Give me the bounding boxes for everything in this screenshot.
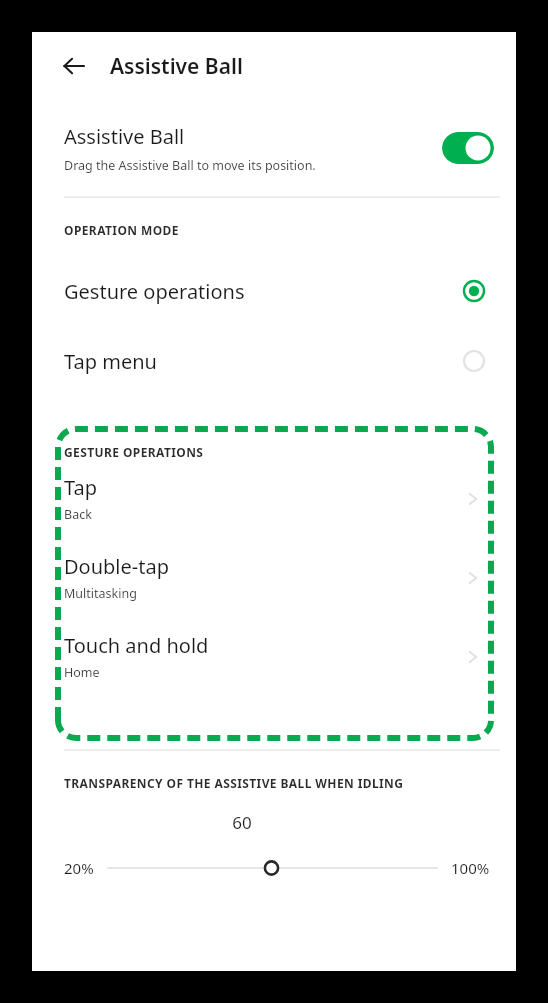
button[interactable]: Back [52,44,96,88]
staticText: Double-tap [64,553,169,580]
button[interactable]: Touch and hold [55,632,494,681]
staticText: Home [64,664,100,681]
staticText: Tap menu [64,348,462,375]
button[interactable]: Tap [55,474,494,523]
staticText: Tap [64,474,98,501]
button[interactable]: Transparency slider [108,848,437,888]
staticText: TRANSPARENCY OF THE ASSISTIVE BALL WHEN … [64,775,404,791]
button[interactable]: Assistive Ball [32,100,516,196]
staticText: GESTURE OPERATIONS [64,444,204,460]
staticText: Multitasking [64,585,137,602]
staticText: 100% [451,858,490,878]
staticText: OPERATION MODE [64,222,179,238]
staticText: Drag the Assistive Ball to move its posi… [64,157,316,174]
staticText: Assistive Ball [64,123,185,150]
button[interactable]: Tap menu [32,326,516,396]
staticText: 60 [0,811,484,834]
button[interactable]: Gesture operations [32,256,516,326]
staticText: Gesture operations [64,278,462,305]
staticText: Touch and hold [64,632,209,659]
staticText: 20% [64,858,94,878]
button[interactable]: Double-tap [55,553,494,602]
staticText: Assistive Ball [110,52,243,81]
button[interactable]: Assistive Ball toggle [442,132,494,164]
staticText: Back [64,506,92,523]
